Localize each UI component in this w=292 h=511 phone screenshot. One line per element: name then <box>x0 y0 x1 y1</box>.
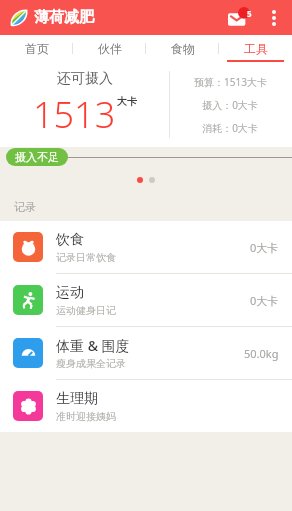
staticText: 摄入：0大卡 <box>202 98 258 112</box>
staticText: 瘦身成果全记录 <box>56 357 126 370</box>
staticText: 消耗：0大卡 <box>202 121 258 135</box>
staticText: 记录 <box>14 200 36 214</box>
staticText: 大卡 <box>117 95 137 108</box>
button[interactable]: 生理期 <box>0 380 292 432</box>
staticText: 还可摄入 <box>57 70 113 88</box>
button[interactable]: 运动 <box>0 274 292 327</box>
staticText: 0大卡 <box>250 293 279 308</box>
button[interactable]: 摄入不足 <box>6 148 68 166</box>
staticText: 工具 <box>244 41 268 56</box>
button[interactable]: More options <box>265 5 283 31</box>
staticText: 饮食 <box>56 231 84 249</box>
staticText: 体重 & 围度 <box>56 336 130 355</box>
staticText: 运动健身日记 <box>56 304 116 317</box>
button[interactable]: 食物 <box>146 35 219 62</box>
staticText: 1513 <box>33 90 116 139</box>
staticText: 预算：1513大卡 <box>194 75 267 89</box>
staticText: 生理期 <box>56 390 98 408</box>
staticText: 0大卡 <box>250 240 279 255</box>
button[interactable]: 饮食 <box>0 221 292 274</box>
button[interactable]: 体重 & 围度 <box>0 327 292 380</box>
staticText: 50.0kg <box>244 346 279 361</box>
staticText: 记录日常饮食 <box>56 251 116 264</box>
button[interactable]: 工具 <box>219 35 292 62</box>
staticText: 运动 <box>56 284 84 302</box>
button[interactable]: 伙伴 <box>73 35 146 62</box>
staticText: 伙伴 <box>98 41 122 56</box>
button[interactable]: 首页 <box>0 35 73 62</box>
staticText: 摄入不足 <box>15 150 59 164</box>
staticText: 食物 <box>171 41 195 56</box>
staticText: 准时迎接姨妈 <box>56 410 116 423</box>
button[interactable]: Messages, 5 unread <box>227 5 257 31</box>
staticText: 首页 <box>25 41 49 56</box>
staticText: 5 <box>247 8 252 19</box>
staticText: 薄荷减肥 <box>34 8 94 27</box>
